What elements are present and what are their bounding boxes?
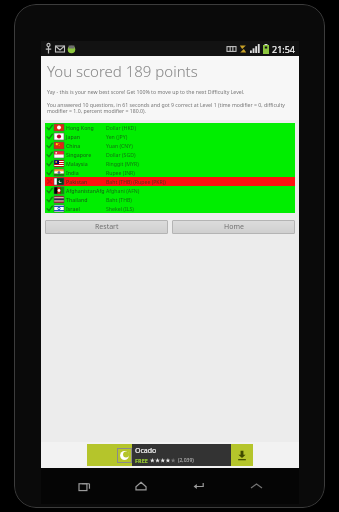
staticText: AfghanistanAfghan bbox=[66, 187, 106, 194]
staticText: Home bbox=[224, 222, 244, 232]
staticText: You scored 189 points bbox=[47, 61, 198, 81]
staticText: Yen (JPY) bbox=[106, 133, 128, 140]
staticText: Thailand bbox=[66, 196, 88, 203]
staticText: You answered 10 questions, in 61 seconds… bbox=[47, 101, 293, 115]
staticText: Baht (THB) (Rupee (PKR)) bbox=[106, 178, 166, 185]
button[interactable]: Back bbox=[184, 471, 214, 501]
staticText: Ocado bbox=[135, 446, 157, 456]
staticText: Malaysia bbox=[66, 160, 88, 167]
button[interactable]: Pakistan bbox=[45, 177, 295, 186]
staticText: Singapore bbox=[66, 151, 92, 158]
button[interactable]: India bbox=[45, 168, 295, 177]
staticText: Shekel (ILS) bbox=[106, 205, 134, 212]
button[interactable]: Israel bbox=[45, 204, 295, 213]
button[interactable]: Thailand bbox=[45, 195, 295, 204]
staticText: Baht (THB) bbox=[106, 196, 132, 203]
button[interactable]: Home bbox=[172, 220, 295, 234]
staticText: Afghani (AFN) bbox=[106, 187, 140, 194]
staticText: Ringgit (MYR) bbox=[106, 160, 139, 167]
staticText: Pakistan bbox=[66, 178, 88, 185]
staticText: Yay - this is your new best score! Get 1… bbox=[47, 88, 245, 95]
button[interactable]: Malaysia bbox=[45, 159, 295, 168]
staticText: Yuan (CNY) bbox=[106, 142, 133, 149]
staticText: India bbox=[66, 169, 79, 176]
staticText: Dollar (SGD) bbox=[106, 151, 136, 158]
staticText: Restart bbox=[95, 222, 119, 232]
button[interactable]: Singapore bbox=[45, 150, 295, 159]
button[interactable]: Recents bbox=[69, 471, 99, 501]
button[interactable]: Ocado bbox=[87, 444, 253, 466]
staticText: Israel bbox=[66, 205, 80, 212]
staticText: (2,039) bbox=[178, 457, 194, 464]
staticText: China bbox=[66, 142, 81, 149]
staticText: FREE bbox=[135, 457, 148, 464]
staticText: Dollar (HKD) bbox=[106, 124, 136, 131]
button[interactable]: AfghanistanAfghan bbox=[45, 186, 295, 195]
staticText: Rupee (INR) bbox=[106, 169, 135, 176]
button[interactable]: China bbox=[45, 141, 295, 150]
button[interactable]: Hong Kong bbox=[45, 123, 295, 132]
button[interactable]: Japan bbox=[45, 132, 295, 141]
button[interactable]: Restart bbox=[45, 220, 168, 234]
button[interactable]: Install bbox=[231, 444, 253, 466]
button[interactable]: Expand bbox=[241, 471, 271, 501]
staticText: 21:54 bbox=[272, 43, 296, 55]
staticText: Japan bbox=[66, 133, 80, 140]
button[interactable]: Home bbox=[126, 471, 156, 501]
staticText: Hong Kong bbox=[66, 124, 94, 131]
